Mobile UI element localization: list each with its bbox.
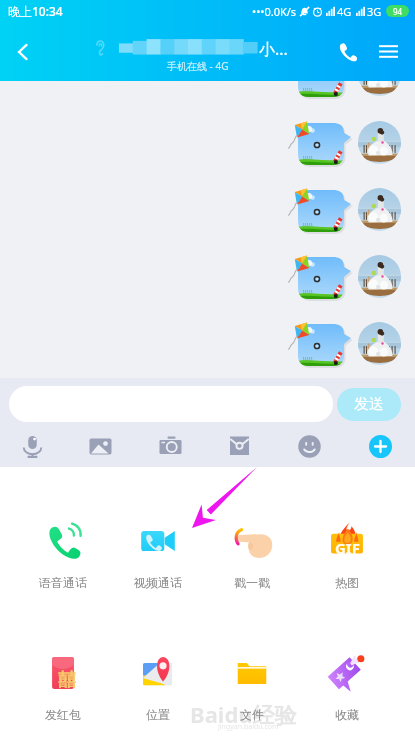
button[interactable]: 文件: [214, 652, 290, 722]
button[interactable]: Message input: [9, 386, 333, 422]
button[interactable]: 收藏: [309, 652, 385, 722]
button[interactable]: Image message: [293, 253, 353, 303]
button[interactable]: Gallery: [79, 425, 121, 467]
button[interactable]: Avatar: [358, 188, 401, 231]
staticText: GIF: [335, 538, 360, 558]
button[interactable]: Image message: [293, 320, 353, 370]
button[interactable]: Camera: [149, 425, 191, 467]
button[interactable]: Emoji: [288, 425, 330, 467]
button[interactable]: Back: [0, 22, 46, 81]
staticText: 发送: [354, 395, 384, 414]
button[interactable]: Menu: [366, 22, 410, 81]
staticText: 发红包: [45, 707, 81, 722]
staticText: 视频通话: [134, 575, 182, 590]
button[interactable]: Image message: [293, 119, 353, 169]
button[interactable]: More: [359, 425, 401, 467]
button[interactable]: 位置: [120, 652, 196, 722]
staticText: 94: [393, 6, 403, 17]
staticText: 热图: [335, 575, 359, 590]
button[interactable]: 语音通话: [25, 520, 101, 590]
button[interactable]: 戳一戳: [214, 520, 290, 590]
staticText: 语音通话: [39, 575, 87, 590]
button[interactable]: Image message: [293, 186, 353, 236]
button[interactable]: Call: [326, 22, 368, 81]
staticText: •••0.0K/s: [252, 4, 297, 19]
button[interactable]: 发送: [337, 388, 401, 421]
button[interactable]: Avatar: [358, 53, 401, 96]
button[interactable]: Image message: [293, 51, 353, 101]
button[interactable]: 囍: [25, 652, 101, 722]
staticText: 戳一戳: [234, 575, 270, 590]
staticText: 晚上10:34: [8, 3, 63, 19]
staticText: 3G: [367, 4, 382, 19]
button[interactable]: 视频通话: [120, 520, 196, 590]
button[interactable]: Avatar: [358, 121, 401, 164]
staticText: jingyan.baidu.com: [218, 722, 279, 732]
button[interactable]: Avatar: [358, 322, 401, 365]
staticText: Baidu经验: [190, 699, 297, 729]
staticText: 文件: [240, 707, 264, 722]
staticText: 手机在线 - 4G: [167, 59, 229, 73]
staticText: 4G: [337, 4, 352, 19]
button[interactable]: Red packet: [218, 425, 260, 467]
staticText: 小...: [259, 38, 288, 60]
button[interactable]: Voice: [11, 425, 53, 467]
button[interactable]: GIF: [309, 520, 385, 590]
staticText: 囍: [58, 669, 76, 692]
staticText: 位置: [146, 707, 170, 722]
button[interactable]: Avatar: [358, 255, 401, 298]
staticText: 收藏: [335, 707, 359, 722]
